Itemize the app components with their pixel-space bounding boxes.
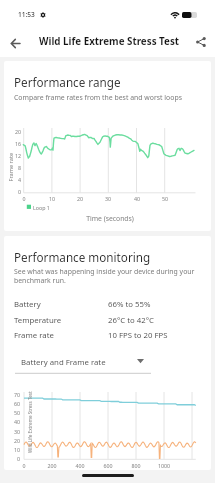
button[interactable]: Share [189, 30, 213, 54]
staticText: Frame rate [14, 330, 54, 341]
staticText: Battery and Frame rate [21, 357, 106, 368]
staticText: 70 [4, 391, 20, 398]
staticText: 20 [4, 437, 20, 444]
button[interactable]: Battery and Frame rate [15, 354, 151, 375]
staticText: 26°C to 42°C [108, 315, 154, 326]
staticText: Battery [14, 299, 41, 310]
staticText: Performance range [14, 74, 121, 90]
staticText: 400 [68, 462, 92, 469]
staticText: 0 [12, 462, 36, 469]
staticText: Frame rate [6, 152, 14, 181]
staticText: 30 [98, 195, 118, 202]
staticText: 0 [4, 455, 20, 462]
button[interactable]: Frame rate [4, 328, 211, 342]
staticText: Performance monitoring [14, 249, 151, 265]
staticText: Compare frame rates from the best and wo… [14, 93, 182, 102]
staticText: Temperature [14, 315, 62, 326]
staticText: 8 [4, 164, 21, 171]
staticText: 4 [4, 176, 21, 183]
staticText: 0 [14, 195, 34, 202]
staticText: 800 [124, 462, 148, 469]
staticText: 50 [4, 409, 20, 416]
staticText: 40 [4, 418, 20, 425]
button[interactable]: Back [2, 31, 26, 55]
staticText: 600 [96, 462, 120, 469]
staticText: 1000 [152, 462, 176, 469]
staticText: 16 [4, 140, 21, 147]
staticText: 40 [127, 195, 147, 202]
staticText: Wild Life Extreme Stress Test [27, 391, 33, 453]
staticText: 30 [4, 428, 20, 435]
staticText: 10 [4, 446, 20, 453]
button[interactable]: Battery [4, 297, 211, 311]
staticText: See what was happening inside your devic… [14, 267, 195, 285]
button[interactable]: Temperature [4, 313, 211, 327]
staticText: 10 [42, 195, 62, 202]
staticText: 0 [4, 188, 21, 195]
staticText: 200 [40, 462, 64, 469]
staticText: 50 [155, 195, 175, 202]
staticText: Loop 1 [33, 204, 50, 211]
staticText: 60 [4, 400, 20, 407]
staticText: 66% to 55% [108, 299, 151, 310]
staticText: 10 FPS to 20 FPS [108, 330, 168, 341]
staticText: Wild Life Extreme Stress Test [39, 35, 180, 48]
staticText: 12 [4, 152, 21, 159]
staticText: 20 [70, 195, 90, 202]
staticText: Time (seconds) [70, 214, 150, 223]
staticText: 20 [4, 128, 21, 135]
staticText: 11:53 [18, 10, 35, 19]
